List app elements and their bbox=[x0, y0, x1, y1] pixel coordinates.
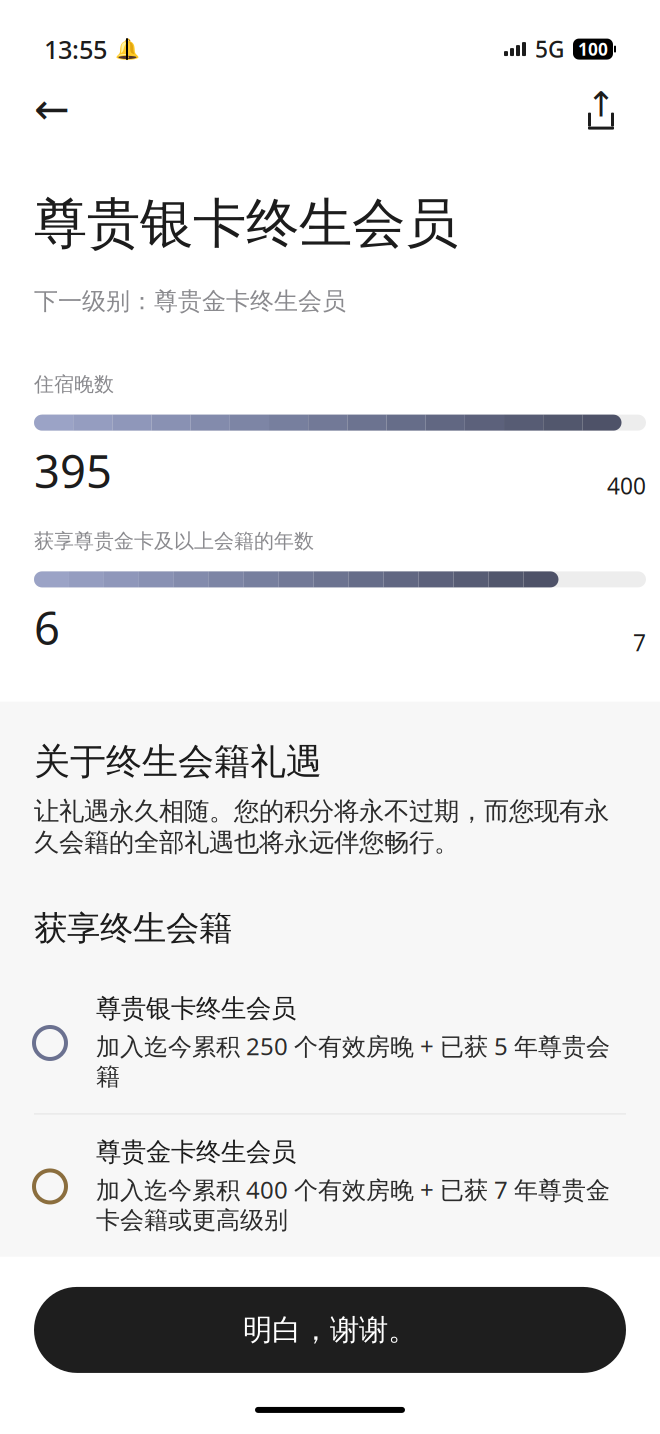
button[interactable]: Share bbox=[576, 84, 626, 134]
staticText: 尊贵银卡终生会员 bbox=[34, 191, 458, 257]
staticText: 6 bbox=[34, 597, 60, 658]
button[interactable]: Back bbox=[34, 84, 84, 134]
staticText: ↑ bbox=[586, 85, 615, 124]
staticText: 下一级别：尊贵金卡终生会员 bbox=[34, 287, 346, 316]
staticText: 尊贵金卡终生会员 bbox=[96, 1136, 296, 1168]
button[interactable]: 明白，谢谢。 bbox=[34, 1287, 626, 1373]
staticText: 395 bbox=[34, 441, 112, 501]
staticText: ← bbox=[34, 85, 70, 133]
button[interactable]: 尊贵金卡终生会员 bbox=[0, 1114, 660, 1257]
staticText: 🔔 bbox=[114, 38, 139, 61]
staticText: 13:55 bbox=[44, 32, 107, 66]
staticText: 关于终生会籍礼遇 bbox=[34, 740, 322, 784]
staticText: 让礼遇永久相随。您的积分将永不过期，而您现有永久会籍的全部礼遇也将永远伴您畅行。 bbox=[34, 796, 609, 858]
staticText: 获享终生会籍 bbox=[34, 908, 232, 949]
staticText: 加入迄今累积 250 个有效房晚 + 已获 5 年尊贵会籍 bbox=[96, 1030, 610, 1091]
staticText: 尊贵银卡终生会员 bbox=[96, 993, 296, 1024]
staticText: 100 bbox=[578, 38, 608, 61]
staticText: 加入迄今累积 400 个有效房晚 + 已获 7 年尊贵金卡会籍或更高级别 bbox=[96, 1174, 610, 1235]
staticText: 5G bbox=[535, 34, 564, 64]
button[interactable]: 尊贵银卡终生会员 bbox=[0, 971, 660, 1113]
staticText: 400 bbox=[607, 471, 646, 501]
staticText: 明白，谢谢。 bbox=[243, 1312, 417, 1348]
staticText: 住宿晚数 bbox=[34, 372, 114, 397]
staticText: 获享尊贵金卡及以上会籍的年数 bbox=[34, 529, 314, 553]
staticText: 7 bbox=[633, 627, 646, 658]
